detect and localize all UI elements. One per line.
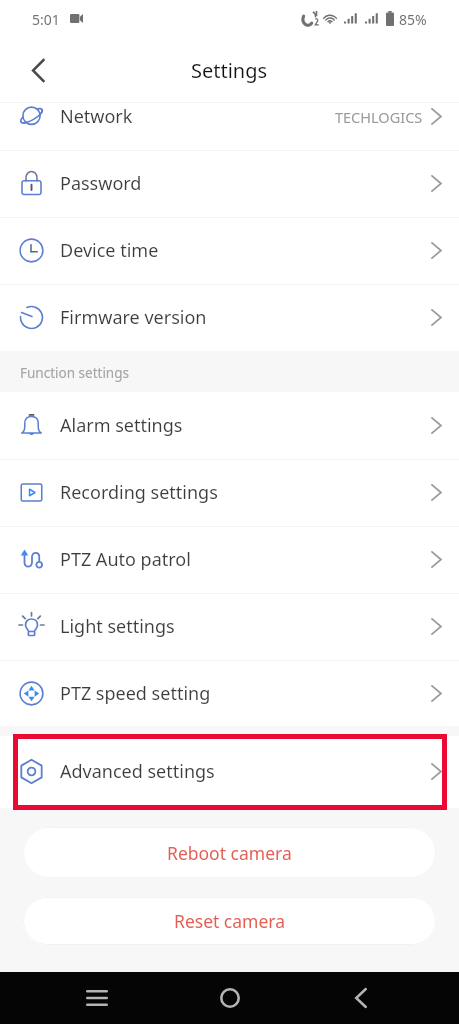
staticText: Advanced settings bbox=[60, 759, 215, 784]
staticText: PTZ Auto patrol bbox=[60, 547, 191, 572]
button[interactable]: Network bbox=[0, 83, 459, 150]
button[interactable]: Device time bbox=[0, 217, 459, 284]
button[interactable]: Alarm settings bbox=[0, 392, 459, 459]
staticText: Settings bbox=[191, 57, 268, 84]
staticText: Function settings bbox=[20, 364, 129, 382]
button[interactable]: Reset camera bbox=[23, 897, 436, 945]
staticText: Reset camera bbox=[174, 909, 286, 933]
button[interactable]: Advanced settings bbox=[0, 738, 459, 805]
staticText: Alarm settings bbox=[60, 413, 183, 438]
button[interactable]: Password bbox=[0, 150, 459, 217]
staticText: TECHLOGICS bbox=[335, 107, 423, 127]
staticText: 5:01 bbox=[32, 10, 60, 29]
button[interactable]: Light settings bbox=[0, 593, 459, 660]
button[interactable]: Reboot camera bbox=[23, 827, 436, 878]
staticText: Network bbox=[60, 104, 133, 129]
button[interactable]: PTZ Auto patrol bbox=[0, 526, 459, 593]
button[interactable]: Firmware version bbox=[0, 284, 459, 351]
button[interactable]: PTZ speed setting bbox=[0, 660, 459, 727]
staticText: Password bbox=[60, 171, 142, 196]
button[interactable]: Recent apps bbox=[71, 972, 123, 1024]
button[interactable]: Home bbox=[204, 972, 256, 1024]
staticText: PTZ speed setting bbox=[60, 681, 211, 706]
staticText: Recording settings bbox=[60, 480, 218, 505]
staticText: Firmware version bbox=[60, 305, 207, 330]
staticText: Device time bbox=[60, 238, 159, 263]
button[interactable]: Back bbox=[12, 44, 64, 96]
button[interactable]: Recording settings bbox=[0, 459, 459, 526]
staticText: 85% bbox=[399, 10, 427, 29]
staticText: Reboot camera bbox=[167, 841, 292, 865]
staticText: Light settings bbox=[60, 614, 175, 639]
button[interactable]: Back bbox=[335, 972, 387, 1024]
